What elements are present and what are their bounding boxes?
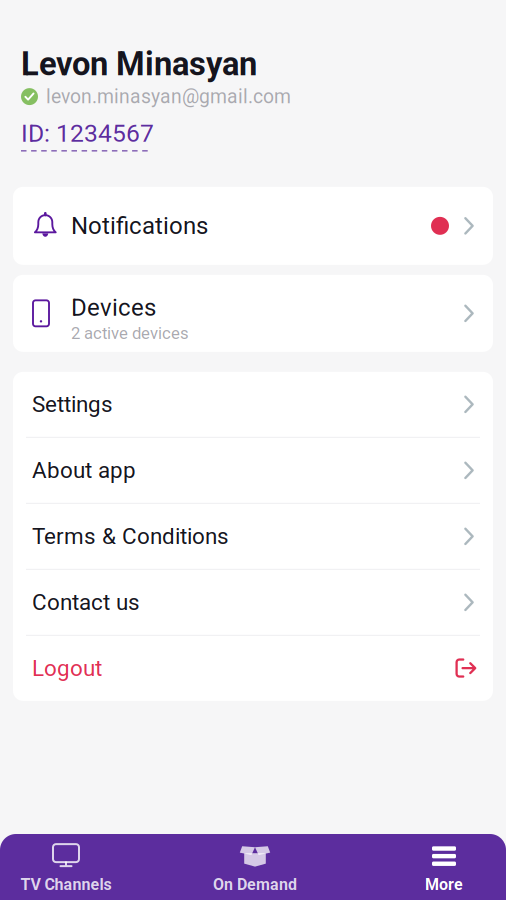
staticText: Settings bbox=[32, 391, 113, 417]
staticText: TV Channels bbox=[20, 875, 111, 894]
button[interactable]: Devices bbox=[13, 275, 493, 352]
staticText: More bbox=[425, 875, 463, 894]
button[interactable]: More bbox=[389, 834, 499, 900]
staticText: Levon Minasyan bbox=[21, 45, 257, 83]
button[interactable]: ID: 1234567 bbox=[0, 108, 154, 152]
staticText: Terms & Conditions bbox=[32, 523, 229, 549]
staticText: ID: 1234567 bbox=[21, 119, 154, 148]
button[interactable]: Contact us bbox=[13, 570, 493, 635]
button[interactable]: Settings bbox=[13, 372, 493, 437]
button[interactable]: On Demand bbox=[200, 834, 310, 900]
staticText: On Demand bbox=[213, 875, 297, 894]
button[interactable]: Notifications bbox=[13, 187, 493, 265]
staticText: Contact us bbox=[32, 589, 140, 615]
button[interactable]: Logout bbox=[13, 636, 493, 701]
staticText: Notifications bbox=[71, 212, 208, 240]
staticText: levon.minasyan@gmail.com bbox=[46, 85, 291, 108]
staticText: Devices bbox=[71, 293, 156, 322]
staticText: 2 active devices bbox=[71, 324, 189, 343]
button[interactable]: TV Channels bbox=[11, 834, 121, 900]
button[interactable]: About app bbox=[13, 438, 493, 503]
staticText: About app bbox=[32, 457, 136, 483]
staticText: Logout bbox=[32, 655, 102, 681]
button[interactable]: Terms & Conditions bbox=[13, 504, 493, 569]
